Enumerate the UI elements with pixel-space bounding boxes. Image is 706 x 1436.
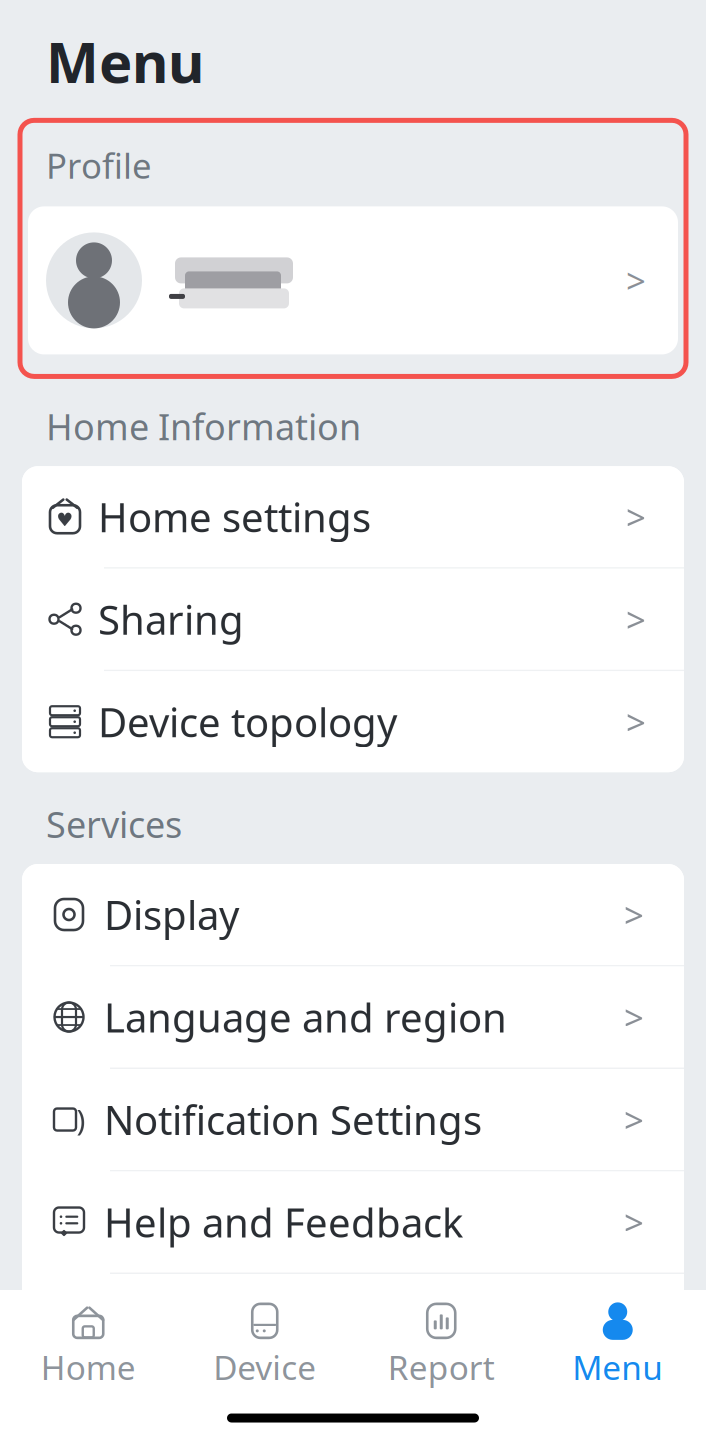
staticText: ♥ [56, 509, 73, 530]
button[interactable]: Home [0, 1290, 176, 1400]
button[interactable]: Device [176, 1290, 353, 1400]
staticText: Display [104, 888, 239, 941]
button[interactable]: Device topology [22, 671, 684, 772]
button[interactable]: Sharing [22, 569, 684, 670]
staticText: > [624, 1301, 644, 1347]
staticText: Notification Settings [104, 1093, 482, 1146]
staticText: Menu [46, 24, 204, 98]
staticText: > [624, 994, 644, 1040]
staticText: > [626, 494, 646, 540]
staticText: > [626, 699, 646, 745]
staticText: ) [76, 1100, 85, 1139]
staticText: Menu [572, 1345, 663, 1389]
staticText: > [624, 891, 644, 937]
staticText: Profile [46, 142, 152, 188]
staticText: Home settings [98, 490, 371, 543]
staticText: > [624, 1096, 644, 1142]
staticText: > [626, 257, 646, 303]
staticText: Services [46, 800, 182, 848]
staticText: Device [213, 1345, 316, 1389]
button[interactable]: ♥ [22, 466, 684, 567]
staticText: > [624, 1199, 644, 1245]
button[interactable]: ) [22, 1069, 684, 1170]
button[interactable]: i [22, 1274, 684, 1375]
staticText: Language and region [104, 990, 507, 1044]
staticText: Help and Feedback [104, 1195, 463, 1249]
button[interactable]: Display [22, 864, 684, 965]
button[interactable]: Language and region [22, 966, 684, 1067]
staticText: About SOLARMAN Smart [104, 1298, 567, 1351]
button[interactable]: Help and Feedback [22, 1171, 684, 1272]
staticText: Device topology [98, 695, 397, 748]
button[interactable]: Report [353, 1290, 529, 1400]
staticText: Home [41, 1345, 136, 1389]
button[interactable]: Menu [529, 1290, 706, 1400]
staticText: > [626, 596, 646, 642]
staticText: Sharing [98, 593, 244, 646]
staticText: Home Information [46, 402, 361, 450]
button[interactable]: > [28, 206, 678, 354]
staticText: Report [388, 1345, 495, 1389]
